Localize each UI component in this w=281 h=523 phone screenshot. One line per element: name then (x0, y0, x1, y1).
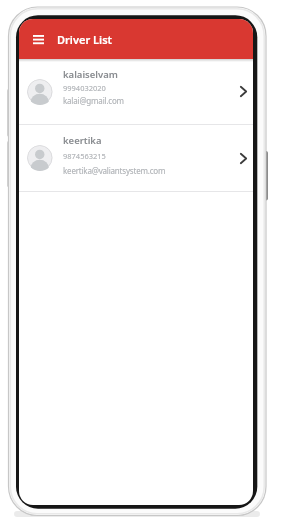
staticText: 9874563215 (63, 151, 106, 161)
staticText: kalai@gmail.com (63, 95, 124, 106)
button[interactable]: keertika (19, 125, 253, 191)
button[interactable] (27, 28, 49, 50)
button[interactable]: kalaiselvam (19, 59, 253, 124)
staticText: kalaiselvam (63, 68, 118, 81)
staticText: Driver List (57, 32, 113, 47)
staticText: 9994032020 (63, 83, 106, 93)
staticText: keertika@valiantsystem.com (63, 165, 166, 176)
staticText: keertika (63, 134, 102, 147)
